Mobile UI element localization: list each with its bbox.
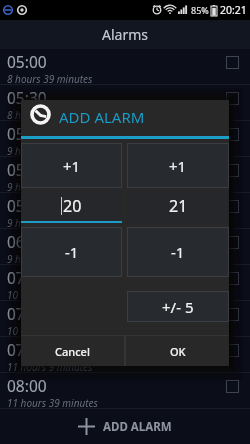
button[interactable]: ADD ALARM — [0, 409, 250, 444]
staticText: 05:30 — [7, 87, 47, 108]
staticText: 06:00 — [7, 231, 47, 252]
button[interactable]: 07:45 — [0, 337, 250, 373]
button[interactable]: -1 — [21, 227, 122, 277]
staticText: Cancel — [55, 344, 90, 359]
staticText: 9 hours 24 minutes — [7, 144, 93, 158]
button[interactable]: +1 — [21, 143, 122, 188]
staticText: 9 hours 29 minutes — [7, 180, 93, 194]
staticText: 10 hours 9 minutes — [7, 324, 93, 338]
staticText: +1 — [169, 156, 187, 176]
staticText: 20:21 — [220, 3, 247, 17]
staticText: 07:00 — [7, 267, 47, 288]
staticText: ADD ALARM — [59, 107, 145, 127]
staticText: 10 hours 39 minutes — [7, 288, 98, 302]
button[interactable]: 07:00 — [0, 265, 250, 301]
button[interactable]: 21 — [127, 190, 229, 223]
button[interactable]: 06:00 — [0, 229, 250, 265]
staticText: 11 hours 39 minutes — [7, 396, 98, 410]
button[interactable]: 20 — [21, 190, 122, 223]
staticText: +/- 5 — [162, 297, 194, 317]
staticText: 11 hours 9 minutes — [7, 360, 93, 374]
button[interactable]: Cancel — [21, 336, 124, 366]
button[interactable]: OK — [126, 336, 229, 366]
staticText: Alarms — [102, 25, 148, 44]
button[interactable]: 05:45 — [0, 121, 250, 157]
staticText: 8 hours 39 minutes — [7, 72, 93, 86]
button[interactable]: +1 — [127, 143, 229, 188]
button[interactable]: 07:30 — [0, 301, 250, 337]
staticText: -1 — [171, 242, 185, 262]
button[interactable]: 05:00 — [0, 49, 250, 85]
button[interactable]: 05:50 — [0, 157, 250, 193]
button[interactable]: 05:55 — [0, 193, 250, 229]
staticText: +1 — [63, 156, 81, 176]
staticText: 21 — [169, 195, 188, 217]
staticText: OK — [170, 344, 186, 359]
staticText: 07:30 — [7, 303, 47, 324]
staticText: 07:45 — [7, 339, 47, 360]
staticText: 20 — [63, 195, 82, 217]
button[interactable]: 08:00 — [0, 373, 250, 409]
staticText: 08:00 — [7, 375, 47, 396]
staticText: 05:50 — [7, 159, 47, 180]
staticText: 9 hours 39 minutes — [7, 252, 93, 266]
staticText: ADD ALARM — [103, 419, 172, 435]
button[interactable]: -1 — [127, 227, 229, 277]
staticText: 05:00 — [7, 51, 47, 72]
staticText: 85% — [191, 4, 209, 16]
staticText: 9 hours 34 minutes — [7, 216, 93, 230]
staticText: 05:55 — [7, 195, 47, 216]
staticText: -1 — [65, 242, 79, 262]
staticText: 8 hours 9 minutes — [7, 108, 87, 122]
button[interactable]: +/- 5 — [127, 291, 229, 322]
staticText: 05:45 — [7, 123, 47, 144]
button[interactable]: 05:30 — [0, 85, 250, 121]
